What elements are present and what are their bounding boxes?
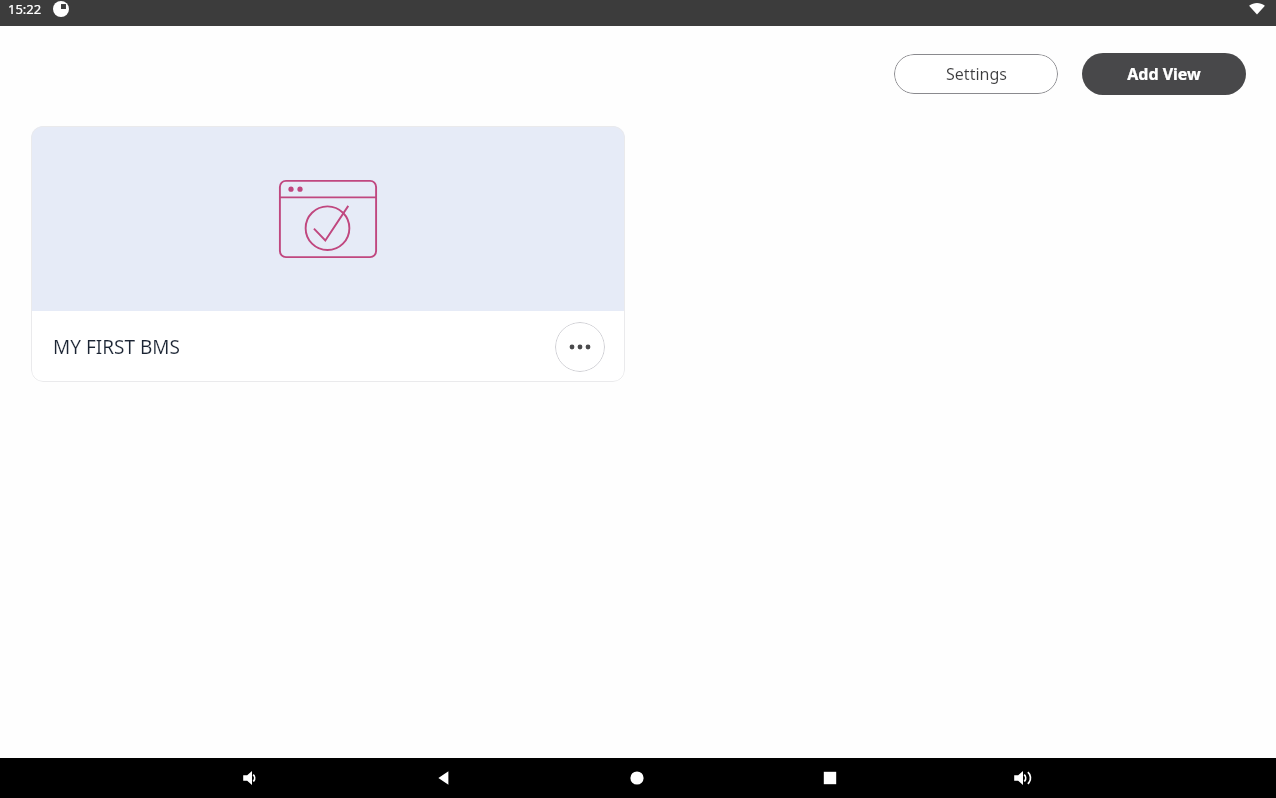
button[interactable]: Home [615,758,659,798]
button[interactable]: Volume up [1001,758,1045,798]
button[interactable]: Volume down [230,758,274,798]
button[interactable]: More options [555,322,605,372]
staticText: 15:22 [8,0,42,18]
button[interactable]: Recents [808,758,852,798]
button[interactable]: Add View [1082,53,1246,95]
button[interactable]: Settings [894,54,1058,94]
staticText: Add View [1127,63,1201,85]
button[interactable]: Back [422,758,466,798]
button[interactable]: MY FIRST BMS [31,126,625,382]
staticText: Settings [946,63,1007,85]
staticText: MY FIRST BMS [53,334,180,360]
